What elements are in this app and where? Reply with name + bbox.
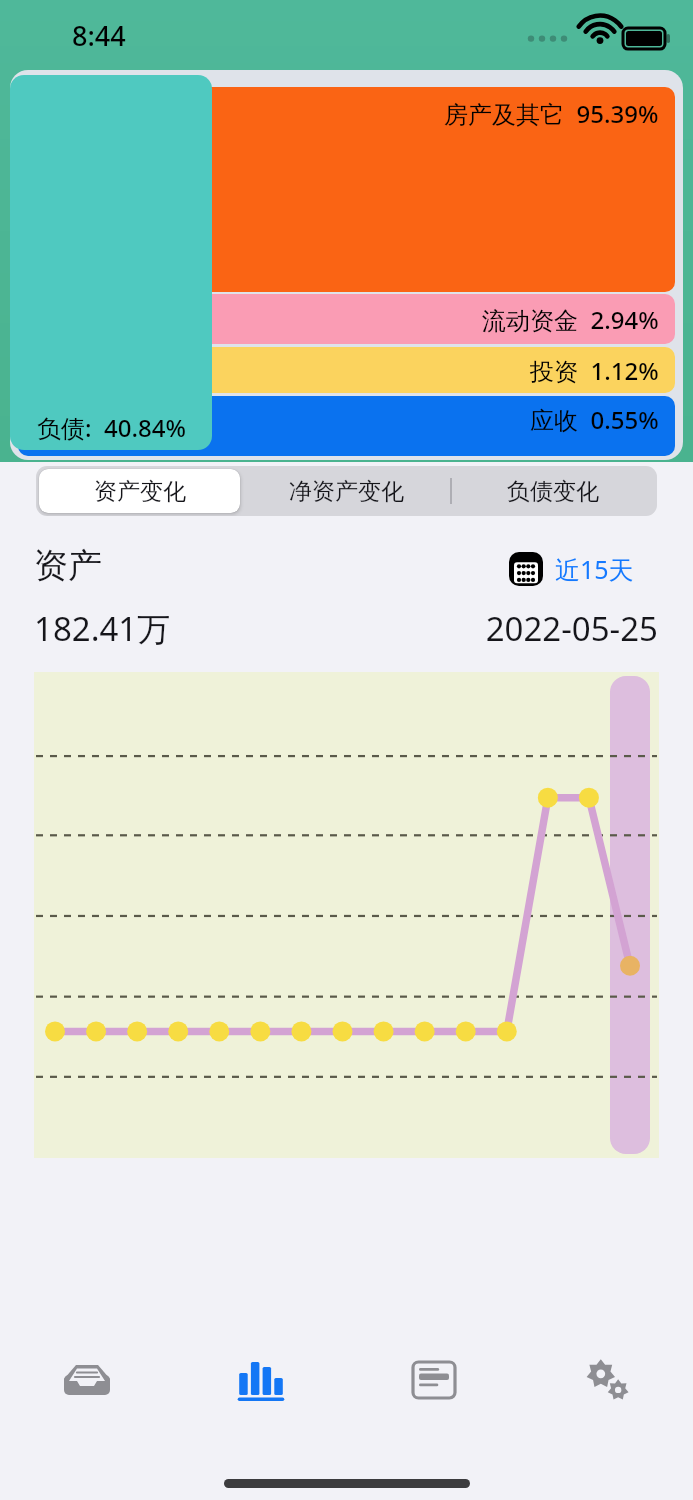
button[interactable]: Statistics	[174, 1335, 347, 1425]
other: Select date range	[505, 548, 547, 590]
staticText: 流动资金 2.94%	[482, 303, 659, 336]
staticText: 182.41万	[34, 606, 171, 651]
button[interactable]: Archive	[0, 1335, 174, 1425]
staticText: 近15天	[555, 552, 634, 586]
staticText: 房产及其它 95.39%	[444, 97, 659, 130]
button[interactable]: 资产变化	[39, 469, 240, 513]
staticText: 净资产变化	[289, 477, 404, 506]
staticText: 负债: 40.84%	[37, 411, 186, 444]
staticText: 应收 0.55%	[530, 403, 659, 436]
button[interactable]: Settings	[520, 1335, 693, 1425]
staticText: 负债变化	[507, 477, 599, 506]
staticText: 资产变化	[94, 477, 186, 506]
staticText: 2022-05-25	[380, 606, 658, 651]
staticText: 8:44	[72, 17, 126, 54]
button[interactable]: Select date range	[505, 548, 634, 590]
staticText: 投资 1.12%	[530, 354, 659, 387]
button[interactable]: 负债变化	[452, 469, 654, 513]
staticText: 资产	[34, 544, 102, 587]
button[interactable]: 净资产变化	[243, 469, 450, 513]
button[interactable]: Records	[347, 1335, 520, 1425]
